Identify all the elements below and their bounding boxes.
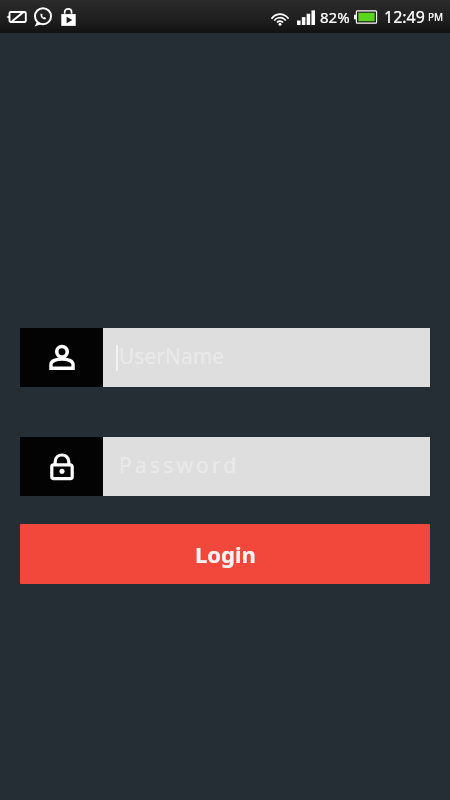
staticText: UserName (119, 342, 225, 371)
other: Password (20, 437, 103, 496)
other: User name (20, 328, 103, 387)
button[interactable]: User name (20, 328, 430, 387)
staticText: Password (119, 451, 240, 480)
button[interactable]: Password (20, 437, 430, 496)
staticText: Login (195, 539, 256, 569)
staticText: PM (428, 10, 444, 24)
staticText: 82% (320, 7, 350, 27)
button[interactable]: Login (20, 524, 430, 584)
staticText: 12:49 (384, 6, 425, 28)
